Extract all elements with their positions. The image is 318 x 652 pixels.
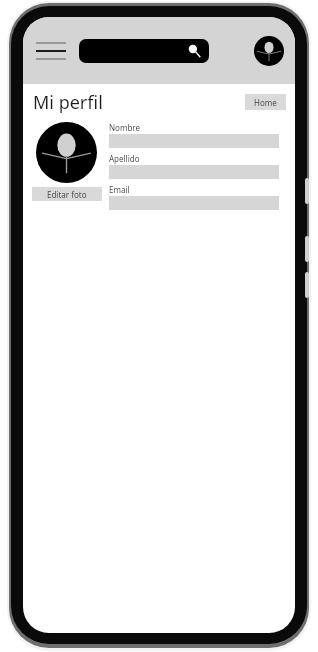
staticText: Email	[109, 184, 130, 195]
button[interactable]: Search	[79, 39, 209, 63]
button[interactable]: Profile photo	[36, 122, 97, 183]
staticText: Nombre	[109, 122, 140, 133]
button[interactable]: Profile	[249, 31, 289, 71]
staticText: Mi perfil	[33, 90, 103, 115]
button[interactable]: Menu	[29, 29, 73, 73]
button[interactable]: Editar foto	[32, 187, 102, 201]
staticText: Editar foto	[47, 189, 87, 200]
staticText: Apellido	[109, 153, 140, 164]
staticText: Home	[254, 97, 277, 108]
button[interactable]: Home	[245, 94, 286, 110]
